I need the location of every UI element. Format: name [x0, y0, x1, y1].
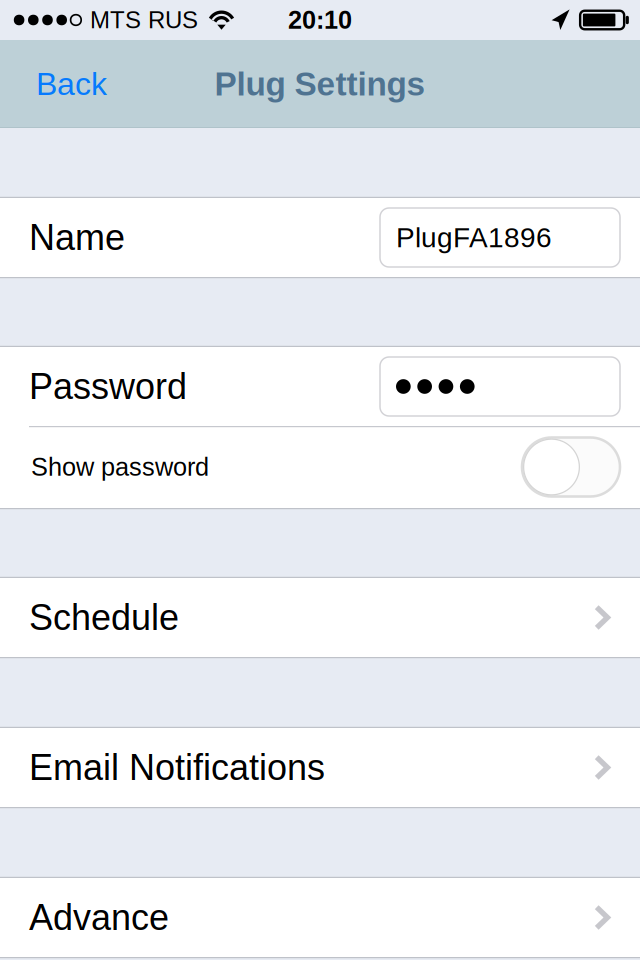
button[interactable]: Advance [0, 878, 640, 957]
staticText: Schedule [29, 597, 179, 638]
staticText: PlugFA1896 [396, 222, 552, 253]
button[interactable]: Email Notifications [0, 728, 640, 807]
staticText: Back [36, 66, 107, 102]
button[interactable]: Back [0, 40, 131, 128]
staticText: Show password [31, 453, 209, 481]
staticText: Email Notifications [29, 747, 325, 788]
staticText: Plug Settings [214, 65, 425, 103]
button[interactable]: Show password [0, 426, 640, 508]
staticText: Advance [29, 897, 169, 938]
staticText: Password [29, 366, 187, 407]
staticText: Name [29, 217, 125, 258]
staticText: 20:10 [288, 6, 352, 34]
button[interactable]: Schedule [0, 578, 640, 657]
staticText: MTS RUS [90, 7, 198, 33]
